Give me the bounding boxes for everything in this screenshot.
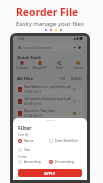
- button[interactable]: Date Modified: [49, 138, 84, 143]
- staticText: Order: [18, 155, 27, 159]
- staticText: Date Modified: [55, 138, 78, 143]
- staticText: New Market Doc .pitced file.pdf: [24, 85, 71, 89]
- staticText: Ascending: [24, 159, 41, 164]
- staticText: 820 KB Jan 09: [24, 102, 42, 106]
- button[interactable]: Descending: [49, 159, 84, 164]
- button[interactable]: 3rd quarter financial report.pdf: [18, 96, 81, 107]
- staticText: Size: [24, 147, 31, 152]
- staticText: Filter: [18, 124, 32, 131]
- staticText: 9:30: [18, 37, 25, 41]
- button[interactable]: Convert: [68, 61, 87, 70]
- staticText: APPLY: [44, 171, 56, 176]
- staticText: 1.2 MB Jan 12: [24, 90, 42, 94]
- staticText: Easily manage your files: [16, 20, 84, 28]
- staticText: Compress: [16, 66, 29, 70]
- staticText: Sort By: [18, 133, 29, 137]
- button[interactable]: Share: [49, 61, 68, 70]
- staticText: Share: [55, 66, 63, 70]
- staticText: Descending: [55, 159, 74, 164]
- staticText: IMAGES: [71, 77, 83, 81]
- staticText: Report for Tiles, date 19.2022.pdf: [24, 109, 72, 113]
- button[interactable]: Compress: [13, 61, 31, 70]
- button[interactable]: Size: [18, 147, 49, 152]
- button[interactable]: APPLY: [18, 169, 82, 177]
- button[interactable]: Name: [18, 138, 49, 143]
- staticText: 4.1 MB Dec 29: [24, 114, 42, 118]
- button[interactable]: Search documents: [18, 43, 81, 51]
- staticText: Reorder File: [16, 5, 79, 19]
- button[interactable]: Ascending: [18, 159, 49, 164]
- staticText: All Files: [17, 76, 33, 82]
- staticText: 3rd quarter financial report.pdf: [24, 97, 71, 101]
- staticText: Quick Tools: [17, 55, 41, 61]
- button[interactable]: New Market Doc .pitced file.pdf: [18, 84, 81, 95]
- button[interactable]: Merge PDF: [31, 61, 49, 70]
- button[interactable]: Report for Tiles, date 19.2022.pdf: [18, 108, 81, 119]
- staticText: Name: [24, 138, 34, 143]
- staticText: PDF: [60, 77, 66, 81]
- staticText: Merge PDF: [33, 66, 47, 70]
- staticText: Convert: [73, 66, 83, 70]
- staticText: Search Document: [23, 45, 52, 50]
